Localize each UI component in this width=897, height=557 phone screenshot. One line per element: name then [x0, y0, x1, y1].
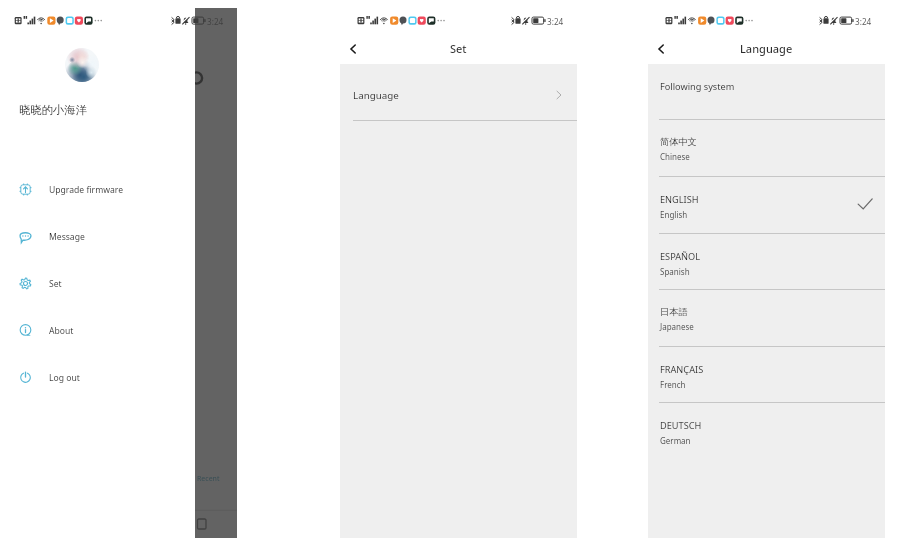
- staticText: DEUTSCH: [660, 419, 702, 432]
- staticText: 日本語: [660, 306, 688, 318]
- staticText: Log out: [49, 372, 80, 384]
- staticText: About: [49, 325, 74, 337]
- staticText: 3:24: [207, 16, 224, 27]
- staticText: Set: [49, 278, 62, 290]
- staticText: 3:24: [855, 16, 872, 27]
- staticText: Following system: [660, 80, 735, 93]
- button[interactable]: FRANÇAIS: [648, 347, 885, 403]
- button[interactable]: Log out: [0, 354, 195, 401]
- button[interactable]: 日本語: [648, 290, 885, 347]
- staticText: Spanish: [660, 266, 690, 277]
- staticText: Chinese: [660, 151, 690, 162]
- staticText: 3:24: [547, 16, 564, 27]
- staticText: Language: [740, 41, 793, 56]
- button[interactable]: Following system: [648, 64, 885, 120]
- button[interactable]: ENGLISH: [648, 177, 885, 234]
- staticText: German: [660, 435, 691, 446]
- staticText: 晓晓的小海洋: [19, 103, 87, 117]
- staticText: Japanese: [660, 321, 694, 332]
- staticText: Upgrade firmware: [49, 184, 123, 196]
- button[interactable]: ESPAÑOL: [648, 234, 885, 290]
- button[interactable]: DEUTSCH: [648, 403, 885, 460]
- button[interactable]: 简体中文: [648, 120, 885, 177]
- button[interactable]: Message: [0, 213, 195, 260]
- button[interactable]: Back: [650, 38, 671, 59]
- staticText: English: [660, 209, 688, 220]
- staticText: FRANÇAIS: [660, 363, 704, 376]
- button[interactable]: Set: [0, 260, 195, 307]
- staticText: French: [660, 379, 686, 390]
- button[interactable]: Upgrade firmware: [0, 166, 195, 213]
- staticText: 简体中文: [660, 136, 697, 148]
- staticText: Message: [49, 231, 85, 243]
- button[interactable]: Back: [342, 38, 363, 59]
- staticText: Recent: [197, 474, 220, 484]
- button[interactable]: Language: [340, 64, 577, 121]
- button[interactable]: About: [0, 307, 195, 354]
- staticText: Set: [450, 41, 467, 56]
- button[interactable]: Profile photo: [65, 48, 99, 82]
- staticText: Language: [353, 89, 399, 102]
- staticText: ESPAÑOL: [660, 250, 701, 263]
- staticText: ENGLISH: [660, 193, 699, 206]
